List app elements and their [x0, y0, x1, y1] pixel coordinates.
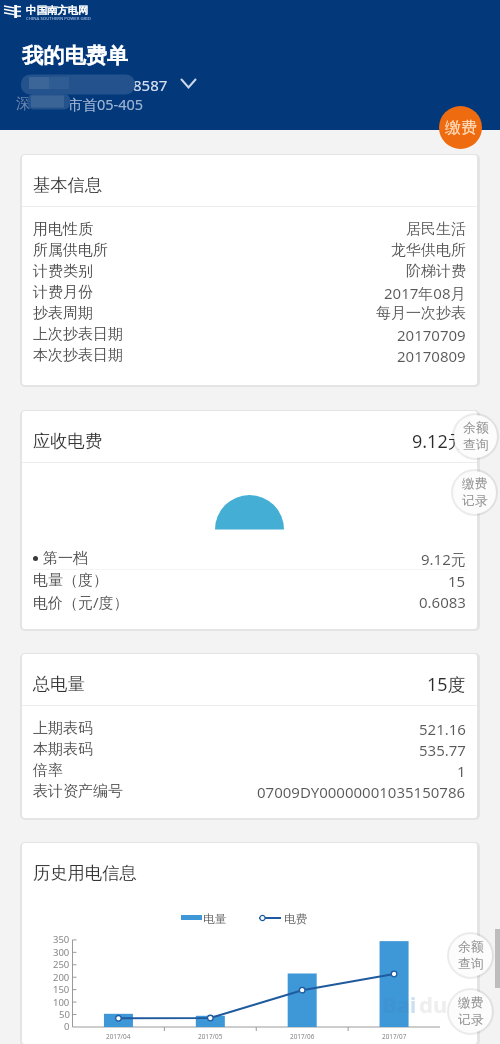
staticText: 电量 [203, 912, 227, 927]
staticText: 用电性质 [33, 220, 93, 239]
staticText: 07009DY00000001035150786 [257, 782, 466, 802]
staticText: 0.6083 [419, 592, 466, 612]
staticText: 余额 [463, 420, 489, 436]
staticText: 250 [53, 958, 70, 971]
button[interactable]: 缴费记录 [453, 471, 496, 514]
staticText: 基本信息 [33, 174, 103, 196]
staticText: 2017/07 [382, 1032, 407, 1041]
button[interactable]: 缴费 [439, 106, 482, 149]
staticText: 9.12元 [412, 429, 466, 454]
staticText: 20170809 [397, 346, 466, 366]
staticText: 电价（元/度） [33, 592, 129, 612]
staticText: 535.77 [419, 740, 466, 760]
staticText: 中国南方电网 [26, 4, 89, 17]
staticText: 每月一次抄表 [376, 304, 466, 323]
staticText: 第一档 [43, 549, 88, 568]
staticText: 计费类别 [33, 262, 93, 281]
button[interactable]: 缴费记录 [449, 990, 492, 1033]
staticText: 记录 [458, 1012, 484, 1028]
button[interactable]: 余额查询 [449, 934, 492, 977]
staticText: 本期表码 [33, 740, 93, 759]
staticText: 20170709 [397, 325, 466, 345]
staticText: 应收电费 [33, 430, 103, 452]
staticText: 缴费 [462, 476, 488, 492]
staticText: 表计资产编号 [33, 782, 123, 801]
staticText: 倍率 [33, 761, 63, 780]
staticText: 50 [59, 1008, 70, 1021]
staticText: 15 [448, 571, 466, 591]
staticText: 居民生活 [406, 220, 466, 239]
staticText: du [419, 989, 448, 1019]
staticText: 我的电费单 [22, 43, 128, 70]
staticText: 9.12元 [421, 549, 466, 569]
staticText: 2017/06 [290, 1032, 315, 1041]
staticText: 龙华供电所 [391, 241, 466, 260]
staticText: 200 [53, 971, 70, 984]
staticText: 余额 [458, 939, 484, 955]
button[interactable]: 余额查询 [454, 415, 497, 458]
staticText: Bai [382, 989, 417, 1019]
staticText: 0 [64, 1020, 70, 1033]
staticText: 深 [16, 94, 31, 112]
staticText: 计费月份 [33, 283, 93, 302]
staticText: 缴费 [458, 995, 484, 1011]
staticText: 历史用电信息 [33, 862, 137, 884]
staticText: CHINA SOUTHERN POWER GRID [26, 15, 91, 21]
staticText: 8587 [133, 75, 168, 95]
staticText: 2017年08月 [384, 283, 466, 303]
staticText: 上期表码 [33, 719, 93, 738]
staticText: 1 [457, 761, 466, 781]
staticText: 350 [53, 933, 70, 946]
staticText: 电费 [284, 912, 308, 927]
staticText: 300 [53, 946, 70, 959]
staticText: 100 [53, 996, 70, 1009]
staticText: 2017/05 [198, 1032, 223, 1041]
staticText: 2017/04 [106, 1032, 131, 1041]
staticText: 上次抄表日期 [33, 325, 123, 344]
staticText: 电量（度） [33, 571, 108, 590]
staticText: 所属供电所 [33, 241, 108, 260]
staticText: 市首05-405 [68, 94, 144, 114]
staticText: 阶梯计费 [406, 262, 466, 281]
staticText: 查询 [458, 956, 484, 972]
staticText: 521.16 [419, 719, 466, 739]
staticText: 本次抄表日期 [33, 346, 123, 365]
staticText: 15度 [427, 672, 466, 697]
staticText: 抄表周期 [33, 304, 93, 323]
staticText: 缴费 [445, 118, 477, 138]
staticText: 总电量 [33, 673, 85, 695]
staticText: 150 [53, 983, 70, 996]
staticText: 记录 [462, 493, 488, 509]
staticText: 查询 [463, 437, 489, 453]
